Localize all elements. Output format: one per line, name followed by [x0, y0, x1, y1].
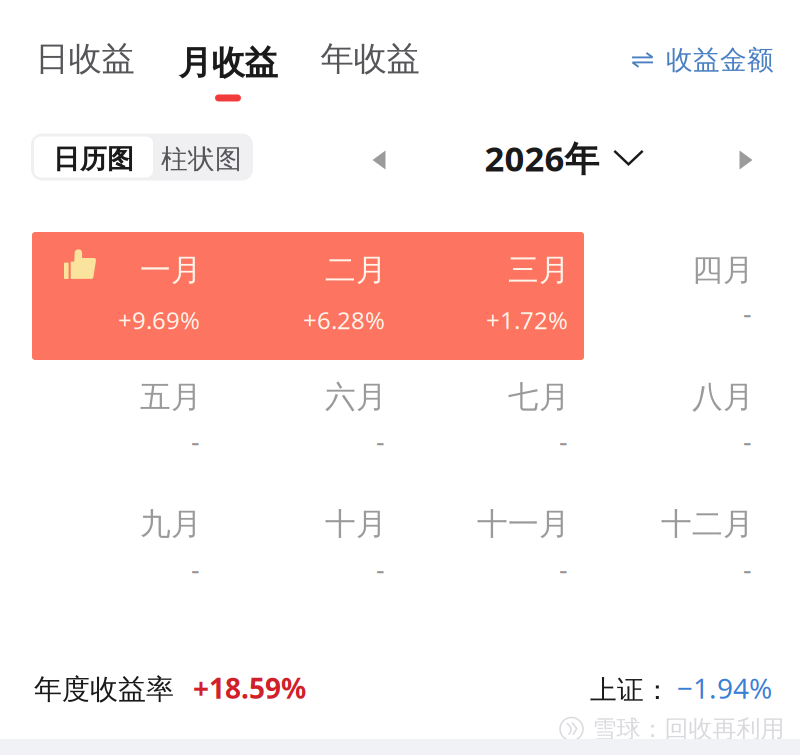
button[interactable]: 月收益: [178, 42, 277, 101]
staticText: 月收益: [178, 42, 277, 83]
staticText: 年度收益率: [34, 672, 174, 707]
staticText: -: [376, 423, 385, 459]
staticText: 2026年: [484, 135, 599, 181]
button[interactable]: Next year: [739, 150, 752, 169]
staticText: -: [743, 295, 752, 331]
staticText: 日历图: [53, 143, 134, 175]
staticText: 柱状图: [161, 143, 242, 175]
staticText: 十二月: [661, 505, 754, 543]
staticText: 四月: [692, 251, 754, 289]
staticText: 雪球：回收再利用: [592, 714, 784, 744]
staticText: 七月: [508, 378, 570, 416]
button[interactable]: 收益金额: [632, 44, 774, 76]
staticText: 上证：: [590, 674, 671, 707]
staticText: −1.94%: [677, 669, 772, 707]
staticText: 五月: [140, 378, 202, 416]
staticText: 八月: [692, 378, 754, 416]
staticText: 六月: [325, 378, 387, 416]
staticText: -: [559, 551, 568, 587]
staticText: 二月: [325, 251, 387, 289]
staticText: +1.72%: [486, 304, 568, 336]
staticText: -: [191, 551, 200, 587]
staticText: 十一月: [477, 505, 570, 543]
staticText: -: [743, 423, 752, 459]
staticText: 一月: [140, 251, 202, 289]
staticText: +18.59%: [193, 669, 306, 707]
staticText: -: [191, 423, 200, 459]
staticText: 九月: [140, 505, 202, 543]
staticText: 年收益: [320, 38, 419, 79]
staticText: -: [743, 551, 752, 587]
button[interactable]: 日历图: [31, 133, 253, 180]
staticText: -: [376, 551, 385, 587]
staticText: +9.69%: [118, 304, 200, 336]
staticText: 三月: [508, 251, 570, 289]
button[interactable]: 年收益: [320, 38, 419, 79]
button[interactable]: Previous year: [372, 150, 385, 169]
button[interactable]: 2026年: [484, 135, 643, 181]
staticText: 十月: [325, 505, 387, 543]
staticText: -: [559, 423, 568, 459]
button[interactable]: 日收益: [35, 38, 134, 79]
staticText: 收益金额: [666, 44, 774, 76]
staticText: 日收益: [35, 38, 134, 79]
staticText: +6.28%: [303, 304, 385, 336]
